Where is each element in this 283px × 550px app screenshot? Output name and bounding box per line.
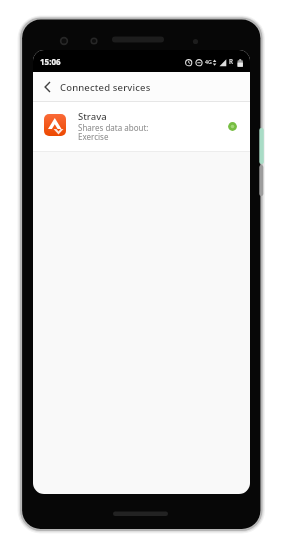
button[interactable]: Strava: [33, 102, 250, 152]
staticText: Exercise: [78, 131, 109, 142]
staticText: 15:06: [40, 56, 61, 67]
staticText: R: [229, 57, 233, 66]
staticText: 4G: [205, 58, 212, 65]
staticText: Shares data about:: [78, 122, 149, 133]
button[interactable]: [35, 74, 59, 100]
staticText: Connected services: [60, 81, 151, 94]
staticText: Strava: [78, 110, 107, 123]
